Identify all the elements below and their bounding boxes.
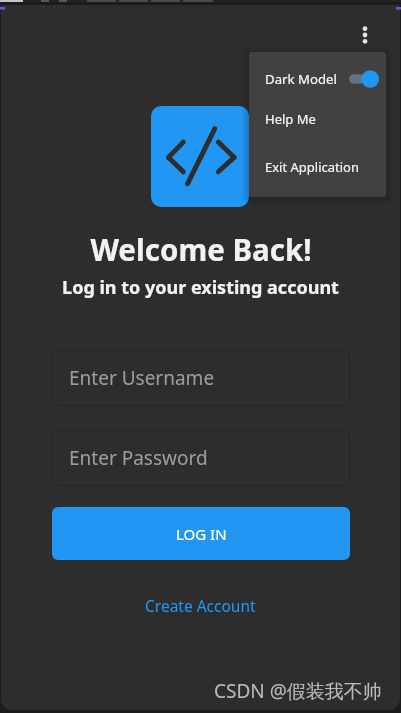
- staticText: Exit Application: [265, 158, 360, 176]
- staticText: Enter Username: [69, 365, 215, 391]
- button[interactable]: LOG IN: [52, 507, 350, 560]
- staticText: LOG IN: [176, 524, 227, 544]
- staticText: Log in to your existing account: [62, 275, 339, 300]
- button[interactable]: Dark Model: [249, 52, 386, 106]
- button[interactable]: Help Me: [249, 97, 386, 141]
- button[interactable]: Dark mode toggle: [349, 70, 379, 88]
- staticText: Help Me: [265, 110, 316, 128]
- staticText: CSDN @假装我不帅: [214, 678, 382, 704]
- button[interactable]: More options: [347, 17, 383, 53]
- button[interactable]: Enter Username: [52, 350, 350, 406]
- staticText: Dark Model: [265, 70, 337, 88]
- button[interactable]: Enter Password: [52, 430, 350, 486]
- staticText: Welcome Back!: [90, 229, 312, 269]
- staticText: Create Account: [145, 595, 256, 616]
- button[interactable]: Create Account: [137, 592, 264, 619]
- staticText: Enter Password: [69, 445, 208, 471]
- button[interactable]: Exit Application: [249, 141, 386, 192]
